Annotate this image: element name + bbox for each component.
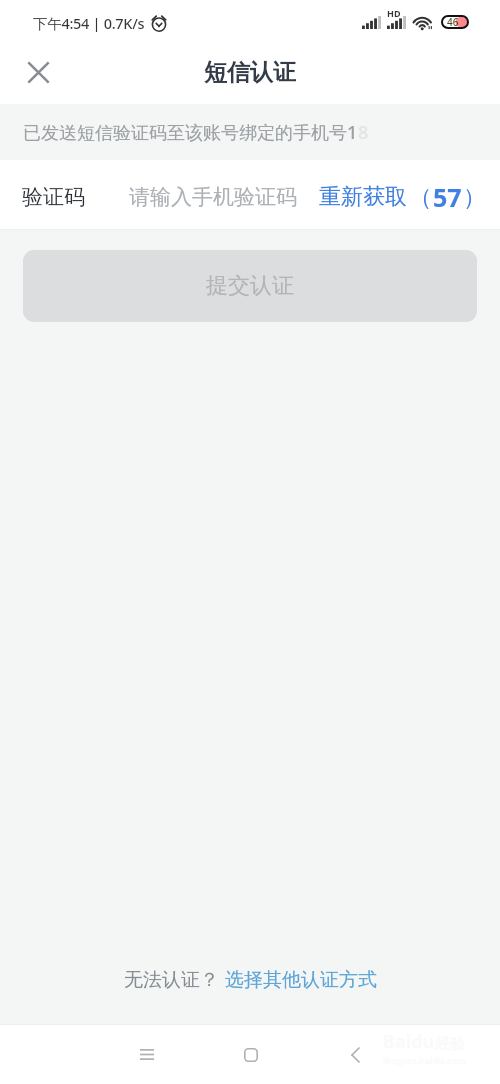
- staticText: 提交认证: [206, 272, 294, 300]
- button[interactable]: Close: [15, 49, 62, 96]
- staticText: 重新获取: [319, 183, 407, 211]
- button[interactable]: Menu: [123, 1031, 170, 1078]
- staticText: HD: [387, 7, 401, 19]
- staticText: 无法认证？: [124, 968, 219, 992]
- staticText: 验证码: [22, 184, 85, 210]
- staticText: （: [409, 183, 432, 212]
- staticText: ）: [463, 183, 486, 212]
- button[interactable]: Home: [227, 1031, 274, 1078]
- staticText: 选择其他认证方式: [225, 968, 377, 992]
- staticText: 57: [433, 180, 462, 214]
- staticText: 8: [358, 120, 369, 145]
- button[interactable]: Back: [332, 1031, 379, 1078]
- staticText: 请输入手机验证码: [129, 184, 315, 210]
- staticText: 短信认证: [204, 58, 296, 87]
- staticText: 下午4:54 | 0.7K/s: [33, 13, 145, 33]
- staticText: 46: [447, 15, 459, 29]
- button[interactable]: 提交认证: [23, 250, 477, 322]
- button[interactable]: 选择其他认证方式: [225, 968, 377, 992]
- button[interactable]: 重新获取: [315, 180, 482, 214]
- staticText: 已发送短信验证码至该账号绑定的手机号1: [23, 120, 358, 145]
